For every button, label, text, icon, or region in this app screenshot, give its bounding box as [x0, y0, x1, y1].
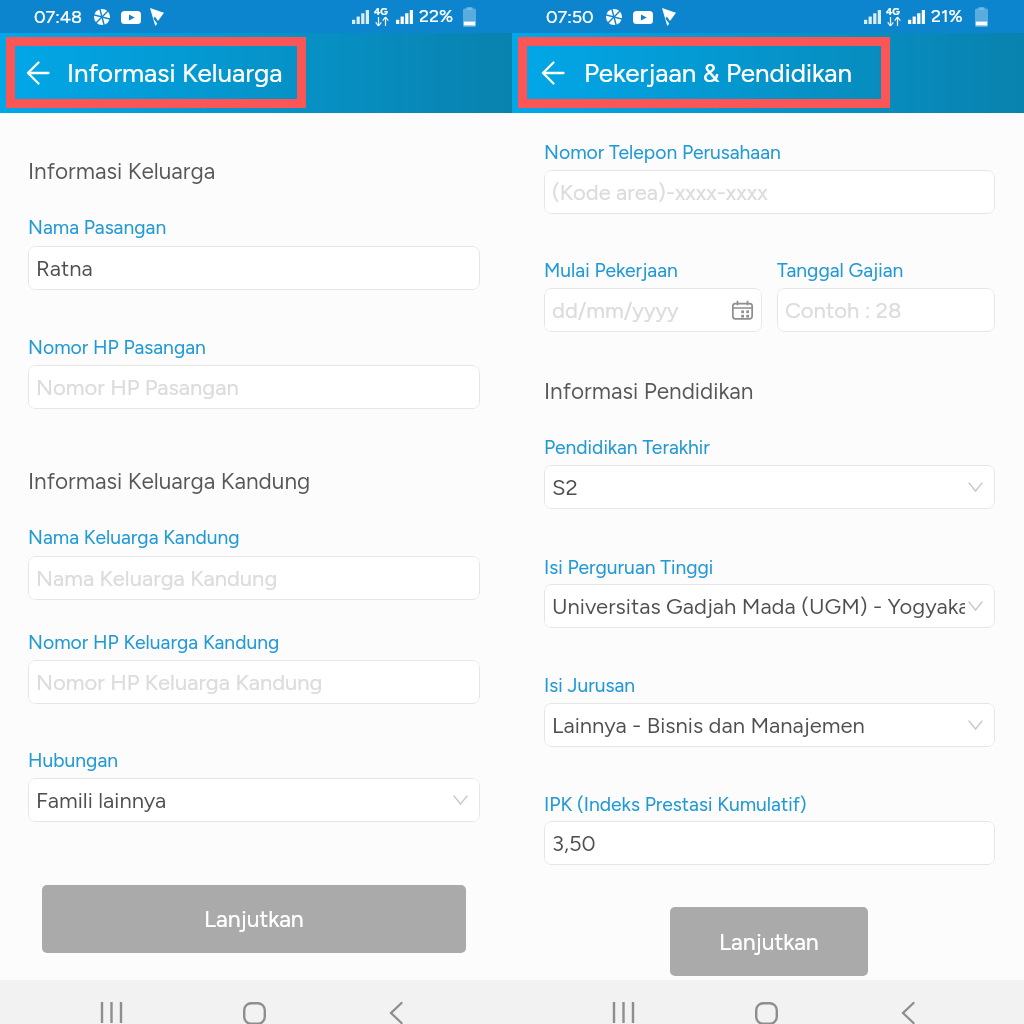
staticText: Nama Pasangan: [28, 216, 167, 239]
staticText: Pendidikan Terakhir: [544, 436, 710, 459]
staticText: Nomor Telepon Perusahaan: [544, 141, 781, 164]
button[interactable]: dd/mm/yyyy: [544, 288, 762, 332]
staticText: Lainnya - Bisnis dan Manajemen: [552, 712, 865, 738]
button[interactable]: Lanjutkan: [670, 907, 868, 976]
staticText: dd/mm/yyyy: [552, 297, 679, 323]
staticText: Nama Keluarga Kandung: [28, 526, 240, 549]
button[interactable]: Ratna: [28, 246, 480, 290]
staticText: Universitas Gadjah Mada (UGM) - Yogyakar: [552, 593, 965, 619]
staticText: Mulai Pekerjaan: [544, 259, 678, 282]
button[interactable]: Lanjutkan: [42, 885, 466, 953]
button[interactable]: Recents: [613, 1002, 635, 1024]
staticText: Informasi Keluarga: [28, 158, 216, 185]
staticText: Ratna: [36, 255, 93, 281]
button[interactable]: Famili lainnya: [28, 778, 480, 822]
staticText: Famili lainnya: [36, 787, 167, 813]
staticText: Informasi Pendidikan: [544, 378, 754, 405]
staticText: Informasi Keluarga Kandung: [28, 468, 311, 495]
staticText: Informasi Keluarga: [67, 57, 283, 88]
staticText: Isi Jurusan: [544, 674, 636, 697]
button[interactable]: Back: [539, 58, 567, 88]
staticText: 3,50: [552, 830, 596, 856]
staticText: S2: [552, 474, 578, 500]
button[interactable]: S2: [544, 465, 995, 509]
button[interactable]: 3,50: [544, 821, 995, 865]
staticText: (Kode area)-xxxx-xxxx: [552, 179, 768, 205]
button[interactable]: Nomor HP Keluarga Kandung: [28, 660, 480, 704]
button[interactable]: Contoh : 28: [777, 288, 995, 332]
button[interactable]: Nomor HP Pasangan: [28, 365, 480, 409]
button[interactable]: Nama Keluarga Kandung: [28, 556, 480, 600]
staticText: 07:50: [546, 6, 594, 28]
button[interactable]: Universitas Gadjah Mada (UGM) - Yogyakar: [544, 584, 995, 628]
button[interactable]: Recents: [101, 1002, 123, 1024]
staticText: Lanjutkan: [719, 928, 819, 956]
staticText: Tanggal Gajian: [777, 259, 904, 282]
staticText: Contoh : 28: [785, 297, 902, 323]
staticText: 07:48: [34, 6, 82, 28]
staticText: 21%: [931, 5, 963, 27]
staticText: 4G: [886, 5, 900, 17]
button[interactable]: Back: [24, 58, 52, 88]
staticText: Hubungan: [28, 749, 119, 772]
staticText: 4G: [374, 5, 388, 17]
staticText: Nomor HP Pasangan: [36, 374, 239, 400]
staticText: 22%: [419, 5, 454, 27]
staticText: Nomor HP Keluarga Kandung: [36, 669, 323, 695]
button[interactable]: Lainnya - Bisnis dan Manajemen: [544, 703, 995, 747]
button[interactable]: (Kode area)-xxxx-xxxx: [544, 170, 995, 214]
button[interactable]: Back: [389, 1002, 405, 1024]
staticText: Nomor HP Pasangan: [28, 336, 206, 359]
staticText: Nomor HP Keluarga Kandung: [28, 631, 280, 654]
staticText: IPK (Indeks Prestasi Kumulatif): [544, 793, 807, 816]
staticText: Isi Perguruan Tinggi: [544, 556, 714, 579]
staticText: Pekerjaan & Pendidikan: [584, 57, 853, 88]
button[interactable]: Home: [243, 1002, 266, 1024]
button[interactable]: Back: [901, 1002, 917, 1024]
staticText: Nama Keluarga Kandung: [36, 565, 278, 591]
button[interactable]: Home: [755, 1002, 778, 1024]
staticText: Lanjutkan: [204, 905, 304, 933]
